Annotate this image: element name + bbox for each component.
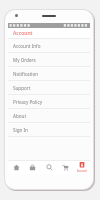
button[interactable]: Account Info: [8, 39, 90, 53]
button[interactable]: Shop: [25, 160, 40, 174]
button[interactable]: My Orders: [8, 53, 90, 67]
staticText: Support: [13, 85, 31, 91]
staticText: My Orders: [13, 57, 36, 63]
button[interactable]: Account: [74, 160, 89, 174]
button[interactable]: Sign In: [8, 123, 90, 137]
staticText: About: [13, 113, 27, 119]
staticText: Account: [77, 169, 87, 173]
staticText: Account: [13, 30, 33, 37]
button[interactable]: Search: [42, 160, 57, 174]
button[interactable]: Home: [9, 160, 24, 174]
staticText: Account Info: [13, 43, 41, 49]
button[interactable]: About: [8, 109, 90, 123]
button[interactable]: Account: [8, 28, 90, 39]
button[interactable]: Notification: [8, 67, 90, 81]
button[interactable]: Cart: [58, 160, 73, 174]
button[interactable]: Privacy Policy: [8, 95, 90, 109]
staticText: Privacy Policy: [13, 99, 42, 105]
button[interactable]: Support: [8, 81, 90, 95]
staticText: Notification: [13, 71, 39, 77]
staticText: Sign In: [13, 127, 28, 133]
